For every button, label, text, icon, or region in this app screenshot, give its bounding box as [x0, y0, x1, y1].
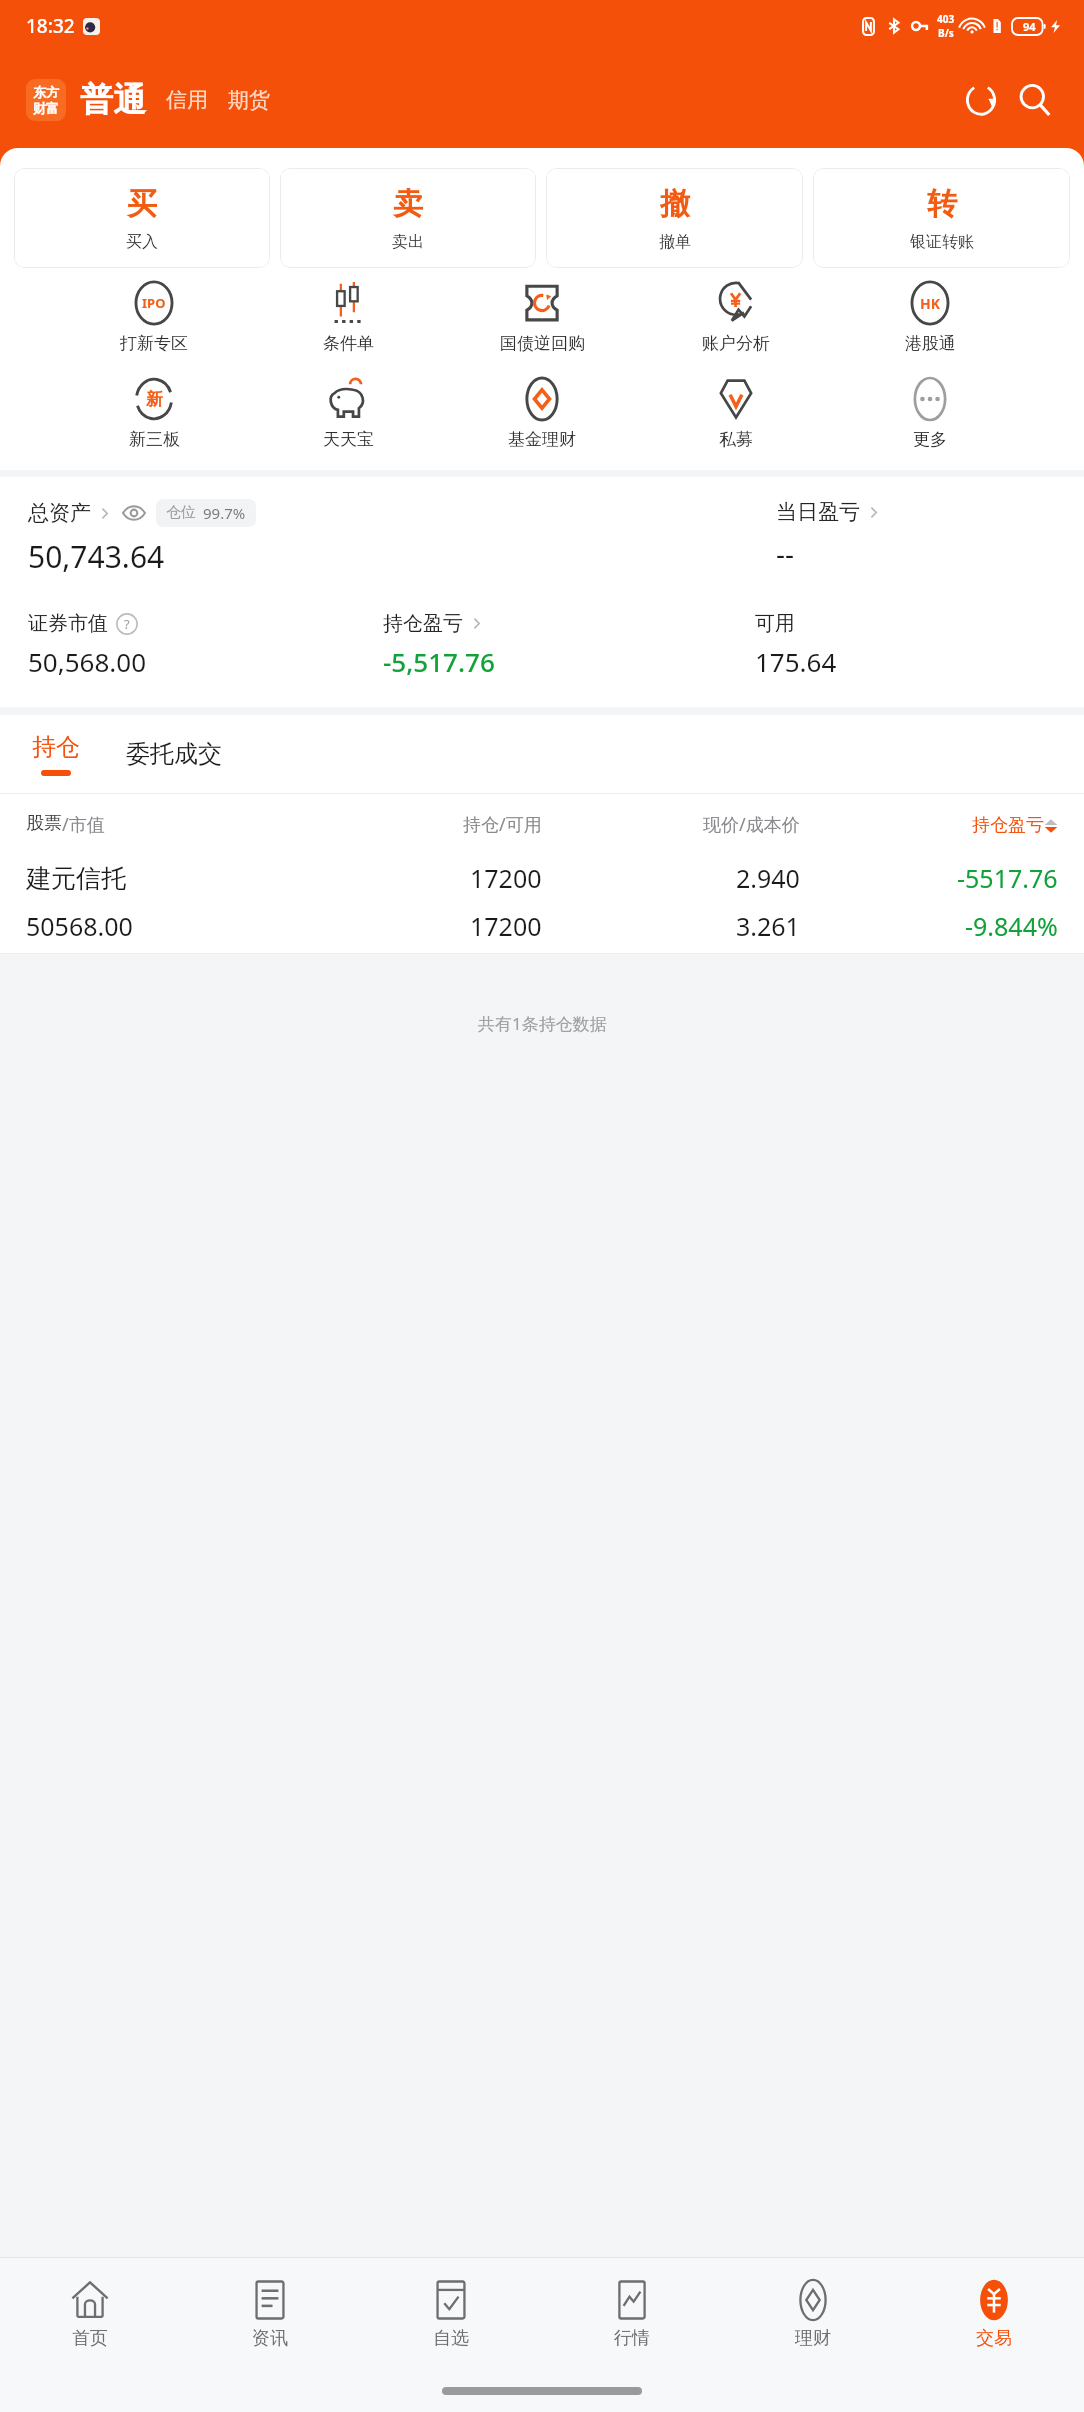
staticText: 持仓盈亏: [383, 611, 463, 636]
staticText: B/s: [938, 26, 954, 40]
button[interactable]: Search: [1012, 77, 1058, 123]
button[interactable]: 持仓盈亏: [383, 611, 484, 636]
button[interactable]: 卖: [280, 168, 536, 268]
button[interactable]: 交易: [903, 2258, 1084, 2370]
staticText: 银证转账: [910, 232, 974, 252]
staticText: 建元信托: [26, 863, 126, 894]
button[interactable]: 自选: [360, 2258, 541, 2370]
staticText: ?: [124, 615, 130, 633]
other: Toggle visibility: [122, 501, 146, 525]
staticText: 基金理财: [508, 429, 576, 450]
staticText: 天天宝: [323, 429, 374, 450]
staticText: 普通: [80, 79, 146, 121]
staticText: 总资产: [28, 500, 91, 526]
staticText: 持仓盈亏: [972, 814, 1044, 837]
staticText: 50,743.64: [28, 536, 165, 577]
staticText: 行情: [614, 2327, 650, 2350]
staticText: -5517.76: [957, 861, 1058, 895]
button[interactable]: 理财: [722, 2258, 903, 2370]
staticText: 打新专区: [120, 333, 188, 354]
button[interactable]: IPO: [106, 280, 202, 354]
button[interactable]: Help: [116, 613, 138, 635]
staticText: 撤: [660, 185, 690, 223]
staticText: 条件单: [323, 333, 374, 354]
button[interactable]: 首页: [0, 2258, 180, 2370]
staticText: 账户分析: [702, 333, 770, 354]
button[interactable]: 国债逆回购: [494, 280, 590, 354]
staticText: 175.64: [755, 644, 837, 679]
button[interactable]: 普通: [80, 79, 146, 121]
staticText: 现价/成本价: [703, 812, 800, 837]
staticText: 委托成交: [126, 739, 222, 769]
staticText: 仓位: [166, 503, 196, 522]
button[interactable]: 资讯: [180, 2258, 360, 2370]
staticText: -9.844%: [965, 909, 1058, 943]
staticText: 403: [937, 12, 955, 26]
staticText: 首页: [72, 2327, 108, 2350]
button[interactable]: Refresh: [958, 77, 1004, 123]
staticText: -5,517.76: [383, 644, 495, 679]
button[interactable]: 基金理财: [494, 376, 590, 450]
button[interactable]: 当日盈亏: [776, 499, 881, 525]
staticText: 理财: [795, 2327, 831, 2350]
staticText: 期货: [228, 87, 270, 113]
button[interactable]: 私募: [688, 376, 784, 450]
staticText: 94: [1023, 19, 1036, 34]
button[interactable]: 总资产: [28, 499, 256, 527]
button[interactable]: 新: [106, 376, 202, 450]
staticText: 当日盈亏: [776, 499, 860, 525]
staticText: 私募: [719, 429, 753, 450]
button[interactable]: 委托成交: [122, 733, 226, 775]
staticText: IPO: [142, 294, 166, 312]
staticText: 交易: [976, 2327, 1012, 2350]
staticText: 99.7%: [203, 503, 246, 523]
button[interactable]: 信用: [166, 79, 208, 121]
staticText: 3.261: [736, 909, 800, 943]
button[interactable]: 撤: [546, 168, 803, 268]
staticText: 国债逆回购: [500, 333, 585, 354]
staticText: 信用: [166, 87, 208, 113]
staticText: 共有1条持仓数据: [478, 1012, 607, 1035]
staticText: 东方: [33, 84, 59, 100]
staticText: /市值: [62, 812, 105, 837]
staticText: 50,568.00: [28, 644, 147, 679]
staticText: 可用: [755, 611, 795, 636]
staticText: 转: [927, 185, 957, 223]
staticText: 卖: [393, 185, 423, 223]
staticText: 证券市值: [28, 611, 108, 636]
staticText: 撤单: [659, 232, 691, 252]
staticText: 资讯: [252, 2327, 288, 2350]
staticText: 新三板: [129, 429, 180, 450]
staticText: 50568.00: [26, 909, 133, 943]
button[interactable]: 行情: [541, 2258, 722, 2370]
staticText: 2.940: [736, 861, 800, 895]
button[interactable]: 更多: [882, 376, 978, 450]
staticText: 新: [146, 389, 163, 410]
button[interactable]: 建元信托: [0, 851, 1084, 943]
button[interactable]: 条件单: [300, 280, 396, 354]
button[interactable]: 期货: [228, 79, 270, 121]
button[interactable]: 转: [813, 168, 1070, 268]
staticText: 18:32: [26, 13, 75, 39]
staticText: 股票: [26, 812, 62, 835]
staticText: 港股通: [905, 333, 956, 354]
button[interactable]: 账户分析: [688, 280, 784, 354]
staticText: 买: [127, 185, 157, 223]
button[interactable]: HK: [882, 280, 978, 354]
staticText: 卖出: [392, 232, 424, 252]
staticText: 17200: [470, 909, 542, 943]
staticText: 持仓: [32, 732, 80, 762]
staticText: 更多: [913, 429, 947, 450]
staticText: 17200: [470, 861, 542, 895]
button[interactable]: 天天宝: [300, 376, 396, 450]
button[interactable]: 持仓: [28, 732, 84, 776]
staticText: 财富: [33, 100, 59, 116]
staticText: --: [776, 534, 795, 572]
staticText: HK: [920, 294, 941, 313]
staticText: 自选: [433, 2327, 469, 2350]
staticText: 持仓/可用: [463, 812, 542, 837]
button[interactable]: 买: [14, 168, 270, 268]
staticText: 买入: [126, 232, 158, 252]
